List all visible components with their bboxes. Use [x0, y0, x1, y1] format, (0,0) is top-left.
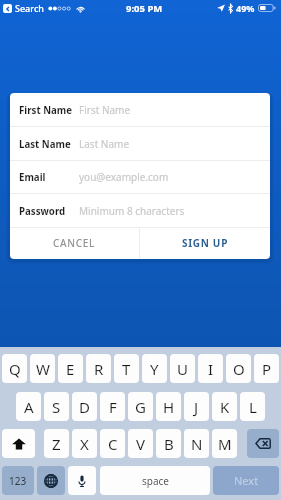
button[interactable]: Change keyboard [37, 466, 65, 495]
staticText: F [109, 397, 117, 417]
staticText: O [233, 359, 245, 379]
button[interactable]: S [44, 392, 69, 421]
button[interactable]: Z [44, 429, 69, 458]
staticText: First Name [19, 104, 73, 117]
button[interactable]: I [198, 354, 223, 383]
button[interactable]: Email [10, 160, 270, 194]
staticText: H [163, 397, 175, 417]
button[interactable]: P [254, 354, 279, 383]
button[interactable]: V [128, 429, 153, 458]
button[interactable]: W [30, 354, 55, 383]
button[interactable]: Y [142, 354, 167, 383]
button[interactable]: Q [2, 354, 27, 383]
staticText: 49% [236, 2, 255, 14]
staticText: V [136, 434, 146, 454]
staticText: R [94, 359, 104, 379]
staticText: I [208, 359, 214, 379]
button[interactable]: Space [100, 466, 210, 495]
staticText: Y [150, 359, 159, 379]
staticText: M [218, 434, 232, 454]
staticText: Password [19, 205, 66, 218]
staticText: E [66, 359, 75, 379]
staticText: Email [19, 171, 46, 184]
button[interactable]: D [72, 392, 97, 421]
button[interactable]: K [212, 392, 237, 421]
button[interactable]: L [240, 392, 265, 421]
staticText: Next [234, 473, 259, 488]
button[interactable]: First Name [10, 93, 270, 127]
button[interactable]: N [184, 429, 209, 458]
staticText: Q [9, 359, 21, 379]
staticText: G [135, 397, 146, 417]
button[interactable]: SIGN UP [140, 227, 270, 259]
staticText: C [108, 434, 118, 454]
staticText: T [122, 359, 131, 379]
button[interactable]: Password [10, 194, 270, 228]
staticText: Minimum 8 characters [79, 204, 185, 218]
staticText: First Name [79, 103, 131, 117]
staticText: L [249, 397, 257, 417]
staticText: D [79, 397, 90, 417]
staticText: 9:05 PM [126, 2, 163, 15]
button[interactable]: T [114, 354, 139, 383]
button[interactable]: G [128, 392, 153, 421]
button[interactable]: Backspace [247, 429, 279, 458]
button[interactable]: J [184, 392, 209, 421]
staticText: K [220, 397, 230, 417]
staticText: you@example.com [79, 170, 169, 184]
staticText: CANCEL [53, 236, 96, 250]
button[interactable]: CANCEL [10, 227, 139, 259]
button[interactable]: F [100, 392, 125, 421]
button[interactable]: Shift [2, 429, 35, 458]
staticText: SIGN UP [182, 236, 229, 250]
staticText: Last Name [79, 137, 130, 151]
button[interactable]: Last Name [10, 127, 270, 161]
staticText: space [142, 474, 169, 488]
button[interactable]: H [156, 392, 181, 421]
staticText: 123 [9, 474, 27, 488]
button[interactable]: O [226, 354, 251, 383]
staticText: N [191, 434, 203, 454]
staticText: A [24, 397, 34, 417]
button[interactable]: R [86, 354, 111, 383]
button[interactable]: B [156, 429, 181, 458]
staticText: X [80, 434, 89, 454]
button[interactable]: E [58, 354, 83, 383]
staticText: P [262, 359, 272, 379]
other: Back to Search [3, 4, 12, 13]
staticText: J [194, 397, 199, 417]
button[interactable]: U [170, 354, 195, 383]
staticText: U [177, 359, 188, 379]
staticText: Search [15, 2, 44, 14]
staticText: Z [52, 434, 61, 454]
button[interactable]: Numbers [2, 466, 34, 495]
button[interactable]: Dictate [68, 466, 96, 495]
button[interactable]: M [212, 429, 237, 458]
staticText: B [164, 434, 174, 454]
button[interactable]: C [100, 429, 125, 458]
button[interactable]: Next [213, 466, 279, 495]
staticText: W [36, 359, 50, 379]
button[interactable]: X [72, 429, 97, 458]
button[interactable]: A [16, 392, 41, 421]
staticText: Last Name [19, 138, 71, 151]
staticText: S [52, 397, 61, 417]
